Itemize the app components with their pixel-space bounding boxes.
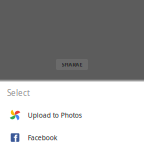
staticText: Facebook <box>28 133 58 142</box>
button[interactable]: Facebook <box>0 126 144 144</box>
button[interactable]: Upload to Photos <box>0 104 144 126</box>
staticText: Upload to Photos <box>28 111 82 119</box>
button[interactable]: SHARAE <box>56 59 88 70</box>
staticText: Select <box>7 88 30 98</box>
staticText: SHARAE <box>61 61 82 68</box>
